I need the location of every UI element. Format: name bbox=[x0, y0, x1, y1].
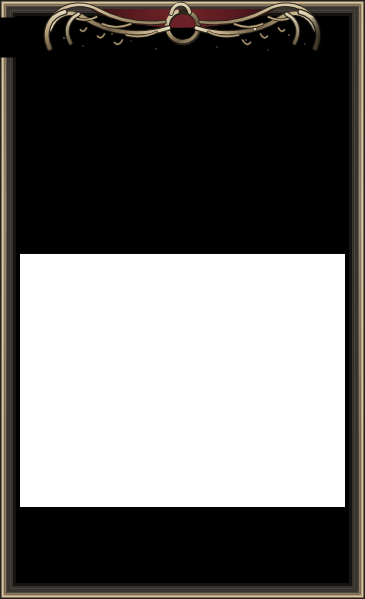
button[interactable]: Ornate framed content screen bbox=[0, 0, 365, 599]
